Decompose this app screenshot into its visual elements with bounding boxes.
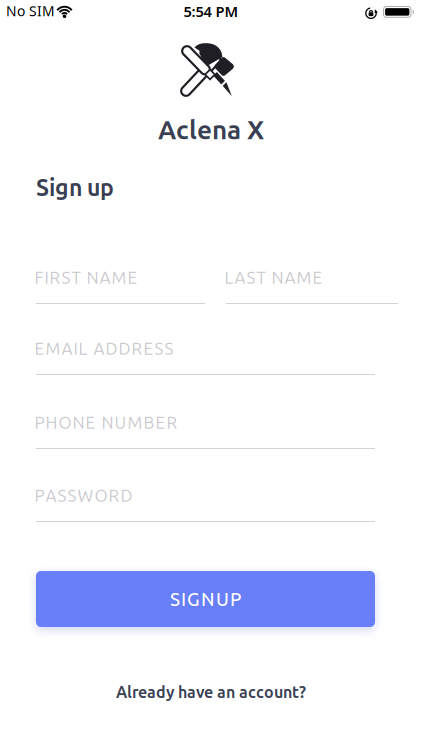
button[interactable]: F I R S T N A M E [36,268,205,304]
button[interactable]: P A S S W O R D [36,486,375,522]
staticText: L A S T N A M E [224,268,322,287]
staticText: Aclena X [158,115,264,144]
staticText: 5:54 PM [183,1,238,21]
staticText: Sign up [36,174,114,200]
staticText: S I G N U P [170,588,241,609]
staticText: P A S S W O R D [34,486,132,505]
button[interactable]: L A S T N A M E [226,268,398,304]
staticText: P H O N E N U M B E R [34,413,177,432]
button[interactable]: P H O N E N U M B E R [36,413,375,449]
button[interactable]: S I G N U P [36,571,375,627]
staticText: Already have an account? [116,683,306,701]
staticText: No SIM [6,1,55,20]
staticText: E M A I L A D D R E S S [34,339,173,358]
staticText: F I R S T N A M E [34,268,137,287]
button[interactable]: E M A I L A D D R E S S [36,339,375,375]
button[interactable]: Already have an account? [0,683,422,701]
